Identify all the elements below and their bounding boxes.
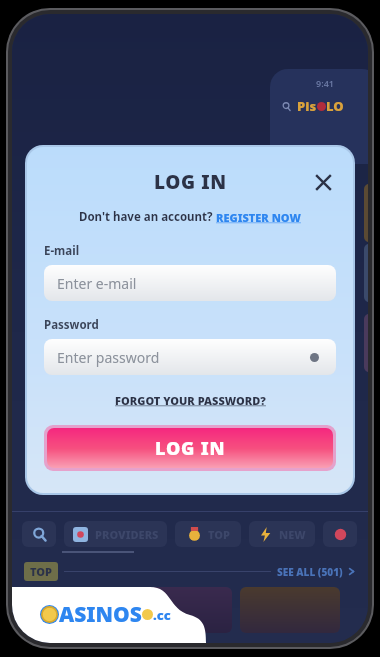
button[interactable]: Enter e-mail <box>44 265 336 301</box>
staticText: E-mail <box>44 243 80 259</box>
staticText: TOP <box>30 564 52 579</box>
staticText: LOG IN <box>154 169 227 195</box>
staticText: SEE ALL (501) <box>277 565 343 579</box>
button[interactable]: FORGOT YOUR PASSWORD? <box>44 393 336 408</box>
staticText: ASINOS <box>59 600 142 629</box>
button[interactable]: Enter password <box>44 339 336 375</box>
staticText: Pis <box>297 97 317 115</box>
staticText: Don't have an account? <box>79 209 216 225</box>
button[interactable]: REGISTER NOW <box>216 210 301 225</box>
staticText: 9:41 <box>316 77 334 89</box>
staticText: PROVIDERS <box>95 527 159 542</box>
staticText: LOG IN <box>155 436 226 461</box>
staticText: NEW <box>279 527 306 542</box>
button[interactable]: NEW <box>249 521 315 547</box>
other: Show password <box>305 348 323 366</box>
staticText: TOP <box>208 527 230 542</box>
button[interactable]: LOG IN <box>47 428 333 468</box>
staticText: Password <box>44 317 99 333</box>
staticText: .cc <box>153 606 171 624</box>
button[interactable]: TOP <box>175 521 241 547</box>
staticText: FORGOT YOUR PASSWORD? <box>115 393 266 408</box>
staticText: LO <box>326 97 344 115</box>
staticText: REGISTER NOW <box>216 210 301 225</box>
staticText: Enter password <box>57 348 160 367</box>
button[interactable]: Close <box>310 169 336 195</box>
button[interactable] <box>22 521 56 547</box>
button[interactable] <box>323 521 357 547</box>
staticText: Enter e-mail <box>57 274 137 293</box>
button[interactable]: PROVIDERS <box>64 521 167 547</box>
